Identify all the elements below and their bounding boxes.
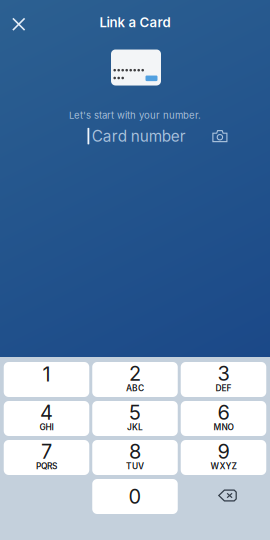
button[interactable]: 7 [4, 440, 89, 475]
staticText: DEF [215, 383, 231, 393]
staticText: 5 [129, 400, 141, 424]
button[interactable]: 3 [181, 362, 266, 397]
button[interactable]: 2 [92, 362, 178, 397]
staticText: 0 [128, 484, 141, 509]
button[interactable]: 0 [92, 479, 178, 514]
staticText: TUV [126, 461, 144, 471]
staticText: 9 [217, 439, 229, 463]
button[interactable]: 6 [181, 401, 266, 436]
staticText: Link a Card [99, 15, 170, 31]
staticText: ABC [126, 383, 144, 393]
staticText: 8 [129, 439, 141, 463]
staticText: Card number [92, 127, 186, 145]
staticText: 1 [42, 362, 50, 386]
button[interactable]: 1 [4, 362, 89, 397]
staticText: 4 [40, 400, 53, 424]
staticText: GHI [39, 422, 53, 432]
button[interactable]: 9 [181, 440, 266, 475]
button[interactable]: Scan card [209, 127, 230, 145]
staticText: 7 [41, 439, 52, 463]
staticText: Let's start with your number. [69, 109, 201, 121]
staticText: 2 [129, 361, 141, 385]
button[interactable]: 8 [92, 440, 178, 475]
staticText: JKL [127, 422, 143, 432]
staticText: MNO [213, 422, 233, 432]
staticText: PQRS [36, 461, 57, 471]
button[interactable]: 5 [92, 401, 178, 436]
staticText: 6 [217, 400, 229, 424]
staticText: WXYZ [210, 461, 236, 471]
button[interactable]: Close [6, 11, 31, 37]
button[interactable]: Delete [181, 479, 266, 514]
staticText: 3 [217, 361, 229, 385]
button[interactable]: 4 [4, 401, 89, 436]
